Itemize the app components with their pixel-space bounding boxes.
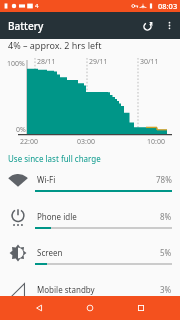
staticText: 4 — [35, 2, 39, 10]
staticText: Wi-Fi — [37, 174, 156, 185]
button[interactable]: Back — [27, 296, 51, 320]
staticText: Screen — [37, 247, 160, 258]
staticText: 100% — [7, 59, 25, 69]
button[interactable]: Home — [78, 296, 102, 320]
staticText: 3% — [160, 284, 172, 295]
staticText: Mobile standby — [37, 284, 160, 295]
staticText: 5% — [160, 247, 172, 258]
staticText: 0% — [16, 125, 26, 135]
button[interactable]: Mobile standby — [0, 272, 180, 308]
staticText: 4% – approx. 2 hrs left — [8, 39, 102, 51]
button[interactable]: Recent apps — [129, 296, 153, 320]
staticText: 8% — [160, 211, 172, 222]
staticText: 08:03 — [158, 1, 178, 11]
staticText: 30/11 — [140, 57, 159, 67]
button[interactable]: Screen — [0, 235, 180, 271]
staticText: 28/11 — [37, 57, 56, 67]
staticText: 03:00 — [77, 137, 95, 147]
staticText: 29/11 — [89, 57, 108, 67]
button[interactable]: More options — [159, 15, 180, 36]
button[interactable]: Phone idle — [0, 199, 180, 235]
staticText: Phone idle — [37, 211, 160, 222]
staticText: 78% — [156, 174, 172, 185]
staticText: 22:00 — [20, 137, 38, 147]
button[interactable]: Refresh — [135, 14, 159, 38]
button[interactable]: Wi-Fi — [0, 162, 180, 198]
staticText: Battery — [8, 19, 135, 33]
button[interactable]: Use since last full charge — [8, 153, 101, 164]
staticText: 10:00 — [147, 137, 165, 147]
